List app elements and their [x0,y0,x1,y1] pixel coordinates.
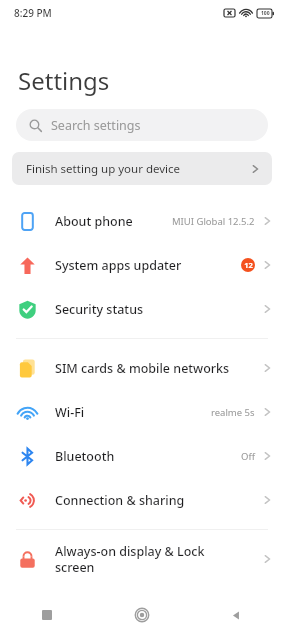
staticText: Off [241,450,255,463]
staticText: Bluetooth [55,448,241,465]
staticText: MIUI Global 12.5.2 [172,215,255,228]
button[interactable]: System apps updater [0,243,284,287]
staticText: Connection & sharing [55,492,263,509]
button[interactable]: Search settings [16,109,268,141]
button[interactable]: Home [94,600,189,630]
staticText: realme 5s [211,406,255,419]
staticText: Security status [55,301,263,318]
staticText: Finish setting up your device [26,161,251,177]
staticText: 100 [261,10,270,17]
button[interactable]: Security status [0,287,284,331]
button[interactable]: Bluetooth [0,434,284,478]
staticText: Search settings [51,117,141,134]
button[interactable]: Wi-Fi [0,390,284,434]
staticText: Always-on display & Lock screen [55,543,263,575]
button[interactable]: Connection & sharing [0,478,284,522]
staticText: Settings [18,64,110,97]
staticText: 12 [244,260,253,270]
staticText: SIM cards & mobile networks [55,360,263,377]
staticText: 8:29 PM [14,6,52,20]
button[interactable]: Finish setting up your device [12,152,272,185]
button[interactable]: Back [189,600,284,630]
button[interactable]: About phone [0,199,284,243]
button[interactable]: SIM cards & mobile networks [0,346,284,390]
button[interactable]: Recent apps [0,600,94,630]
button[interactable]: Always-on display & Lock screen [0,537,284,581]
staticText: System apps updater [55,257,241,274]
staticText: About phone [55,213,172,230]
staticText: Wi-Fi [55,404,211,421]
